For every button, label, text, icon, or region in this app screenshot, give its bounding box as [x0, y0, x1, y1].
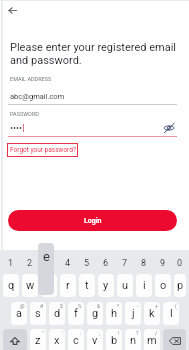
staticText: e: [43, 249, 50, 264]
staticText: Forgot your password?: [10, 146, 76, 154]
staticText: s: [35, 307, 41, 320]
staticText: w: [26, 279, 35, 292]
staticText: &: [97, 303, 101, 309]
button[interactable]: j: [125, 302, 141, 325]
staticText: 2: [27, 258, 33, 269]
button[interactable]: 0: [174, 253, 186, 273]
button[interactable]: i: [136, 274, 152, 297]
staticText: 5: [84, 258, 90, 269]
staticText: c: [73, 334, 79, 347]
button[interactable]: v: [87, 329, 103, 350]
staticText: ': [62, 330, 63, 336]
staticText: PASSWORD: [10, 111, 39, 117]
staticText: o: [160, 279, 167, 292]
button[interactable]: 6: [98, 253, 114, 273]
staticText: v: [92, 334, 98, 347]
button[interactable]: l: [163, 302, 179, 325]
staticText: n: [130, 334, 137, 347]
button[interactable]: k: [144, 302, 160, 325]
button[interactable]: z: [30, 329, 46, 350]
staticText: @: [20, 303, 25, 309]
button[interactable]: m: [144, 329, 160, 350]
button[interactable]: Backspace: [163, 329, 186, 350]
button[interactable]: h: [106, 302, 122, 325]
staticText: ?: [136, 330, 139, 336]
button[interactable]: f: [68, 302, 84, 325]
staticText: h: [111, 307, 118, 320]
button[interactable]: p: [174, 274, 186, 297]
button[interactable]: r: [60, 274, 76, 297]
staticText: 4: [65, 258, 71, 269]
staticText: j: [132, 307, 135, 320]
staticText: m: [147, 334, 157, 347]
staticText: 0: [177, 258, 183, 269]
staticText: abc@gmail.com: [10, 92, 65, 101]
staticText: d: [54, 307, 61, 320]
staticText: 1: [8, 258, 14, 269]
button[interactable]: Forgot your password?: [7, 143, 78, 157]
staticText: ": [42, 330, 44, 336]
button[interactable]: n: [125, 329, 141, 350]
staticText: p: [177, 279, 184, 292]
button[interactable]: 5: [79, 253, 95, 273]
button[interactable]: 1: [3, 253, 19, 273]
button[interactable]: 8: [136, 253, 152, 273]
button[interactable]: y: [98, 274, 114, 297]
button[interactable]: 3: [41, 253, 57, 273]
staticText: t: [85, 279, 89, 292]
staticText: 8: [141, 258, 147, 269]
button[interactable]: Shift: [3, 329, 27, 350]
button[interactable]: 9: [155, 253, 171, 273]
button[interactable]: 2: [22, 253, 38, 273]
staticText: a: [16, 307, 22, 320]
button[interactable]: q: [3, 274, 19, 297]
staticText: #: [40, 303, 44, 309]
staticText: *: [117, 303, 120, 309]
staticText: +: [155, 303, 158, 309]
button[interactable]: Back: [4, 2, 20, 18]
staticText: -: [137, 303, 139, 309]
button[interactable]: a: [11, 302, 27, 325]
staticText: z: [35, 334, 41, 347]
staticText: !: [118, 330, 120, 336]
staticText: (: [175, 303, 177, 309]
button[interactable]: s: [30, 302, 46, 325]
button[interactable]: w: [22, 274, 38, 297]
staticText: 6: [103, 258, 109, 269]
staticText: ;: [99, 330, 101, 336]
button[interactable]: 7: [117, 253, 133, 273]
staticText: 3: [46, 258, 52, 269]
button[interactable]: b: [106, 329, 122, 350]
staticText: Login: [84, 217, 102, 225]
staticText: x: [54, 334, 60, 347]
staticText: f: [74, 307, 78, 320]
button[interactable]: t: [79, 274, 95, 297]
staticText: b: [111, 334, 118, 347]
button[interactable]: 4: [60, 253, 76, 273]
staticText: q: [8, 279, 15, 292]
staticText: k: [149, 307, 155, 320]
button[interactable]: Show password: [162, 121, 176, 135]
button[interactable]: o: [155, 274, 171, 297]
staticText: 7: [122, 258, 128, 269]
button[interactable]: Login: [8, 210, 177, 231]
staticText: l: [170, 307, 173, 320]
button[interactable]: x: [49, 329, 65, 350]
staticText: 9: [160, 258, 166, 269]
staticText: ••••: [10, 123, 23, 134]
staticText: u: [122, 279, 129, 292]
button[interactable]: u: [117, 274, 133, 297]
staticText: /: [155, 330, 158, 336]
staticText: g: [92, 307, 99, 320]
button[interactable]: e: [41, 274, 57, 297]
staticText: y: [103, 279, 109, 292]
staticText: r: [66, 279, 70, 292]
button[interactable]: d: [49, 302, 65, 325]
staticText: EMAIL ADDRESS: [10, 76, 52, 82]
button[interactable]: c: [68, 329, 84, 350]
staticText: %: [78, 303, 82, 309]
button[interactable]: g: [87, 302, 103, 325]
staticText: i: [143, 279, 146, 292]
staticText: :: [80, 330, 82, 336]
